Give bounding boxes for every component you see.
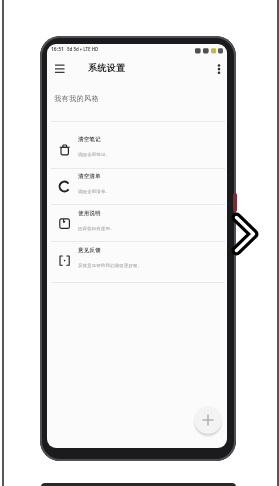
- staticText: 意见反馈: [78, 247, 101, 254]
- staticText: 5d 5d ▾ LTE HD: [67, 46, 99, 52]
- button[interactable]: 清空笔记: [47, 132, 227, 169]
- button[interactable]: [211, 58, 227, 80]
- button[interactable]: [194, 406, 222, 434]
- staticText: 我有我的风格: [54, 94, 99, 103]
- staticText: 清空清单: [78, 173, 101, 180]
- staticText: 系统设置: [88, 62, 126, 73]
- button[interactable]: 清空清单: [47, 169, 227, 206]
- staticText: 告诉你如何使用。: [78, 226, 115, 232]
- button[interactable]: 使用说明: [47, 206, 227, 243]
- staticText: 清除全部清单。: [78, 189, 111, 195]
- staticText: 清空笔记: [78, 136, 101, 143]
- staticText: 使用说明: [78, 210, 101, 217]
- staticText: 反馈意见帮助我们做得更好喔。: [78, 263, 143, 269]
- staticText: 清除全部笔记。: [78, 152, 111, 158]
- staticText: 16:51: [51, 46, 64, 53]
- button[interactable]: 意见反馈: [47, 243, 227, 280]
- button[interactable]: [49, 58, 75, 80]
